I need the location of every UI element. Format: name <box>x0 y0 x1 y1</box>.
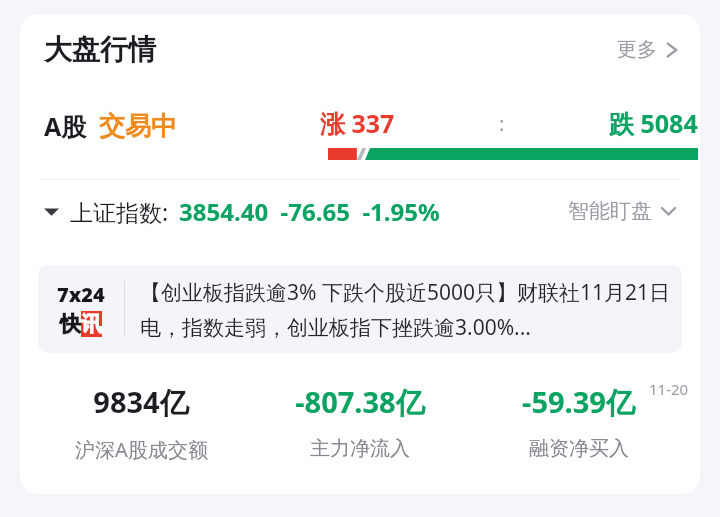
button[interactable]: 更多 <box>611 29 684 70</box>
staticText: 沪深A股成交额 <box>75 436 208 463</box>
staticText: 更多 <box>617 37 657 62</box>
staticText: 3854.40 -76.65 -1.95% <box>179 195 440 228</box>
staticText: 涨 337 <box>320 106 395 140</box>
button[interactable]: 7x24 <box>38 265 682 353</box>
staticText: 交易中 <box>99 110 177 143</box>
button[interactable]: 9834亿 <box>32 382 250 463</box>
button[interactable]: -59.39亿 <box>469 382 688 461</box>
staticText: 11-20 <box>649 379 689 399</box>
staticText: 快 <box>60 311 81 337</box>
staticText: 上证指数: <box>70 196 169 227</box>
staticText: 【创业板指跌逾3% 下跌个股近5000只】财联社11月21日电，指数走弱，创业板… <box>140 278 672 341</box>
button[interactable]: 上证指数: <box>44 195 440 228</box>
staticText: -807.38亿 <box>295 382 425 422</box>
button[interactable]: 智能盯盘 <box>564 190 680 232</box>
button[interactable]: -807.38亿 <box>250 382 469 461</box>
staticText: : <box>499 110 505 137</box>
staticText: 跌 5084 <box>609 106 698 140</box>
staticText: 讯 <box>81 311 102 337</box>
staticText: 大盘行情 <box>44 32 156 67</box>
staticText: 智能盯盘 <box>568 198 652 224</box>
staticText: -59.39亿 <box>522 382 635 422</box>
staticText: 融资净买入 <box>529 436 629 461</box>
staticText: 9834亿 <box>93 382 189 422</box>
staticText: A股 <box>44 109 87 143</box>
staticText: 主力净流入 <box>310 436 410 461</box>
staticText: 7x24 <box>57 281 105 308</box>
